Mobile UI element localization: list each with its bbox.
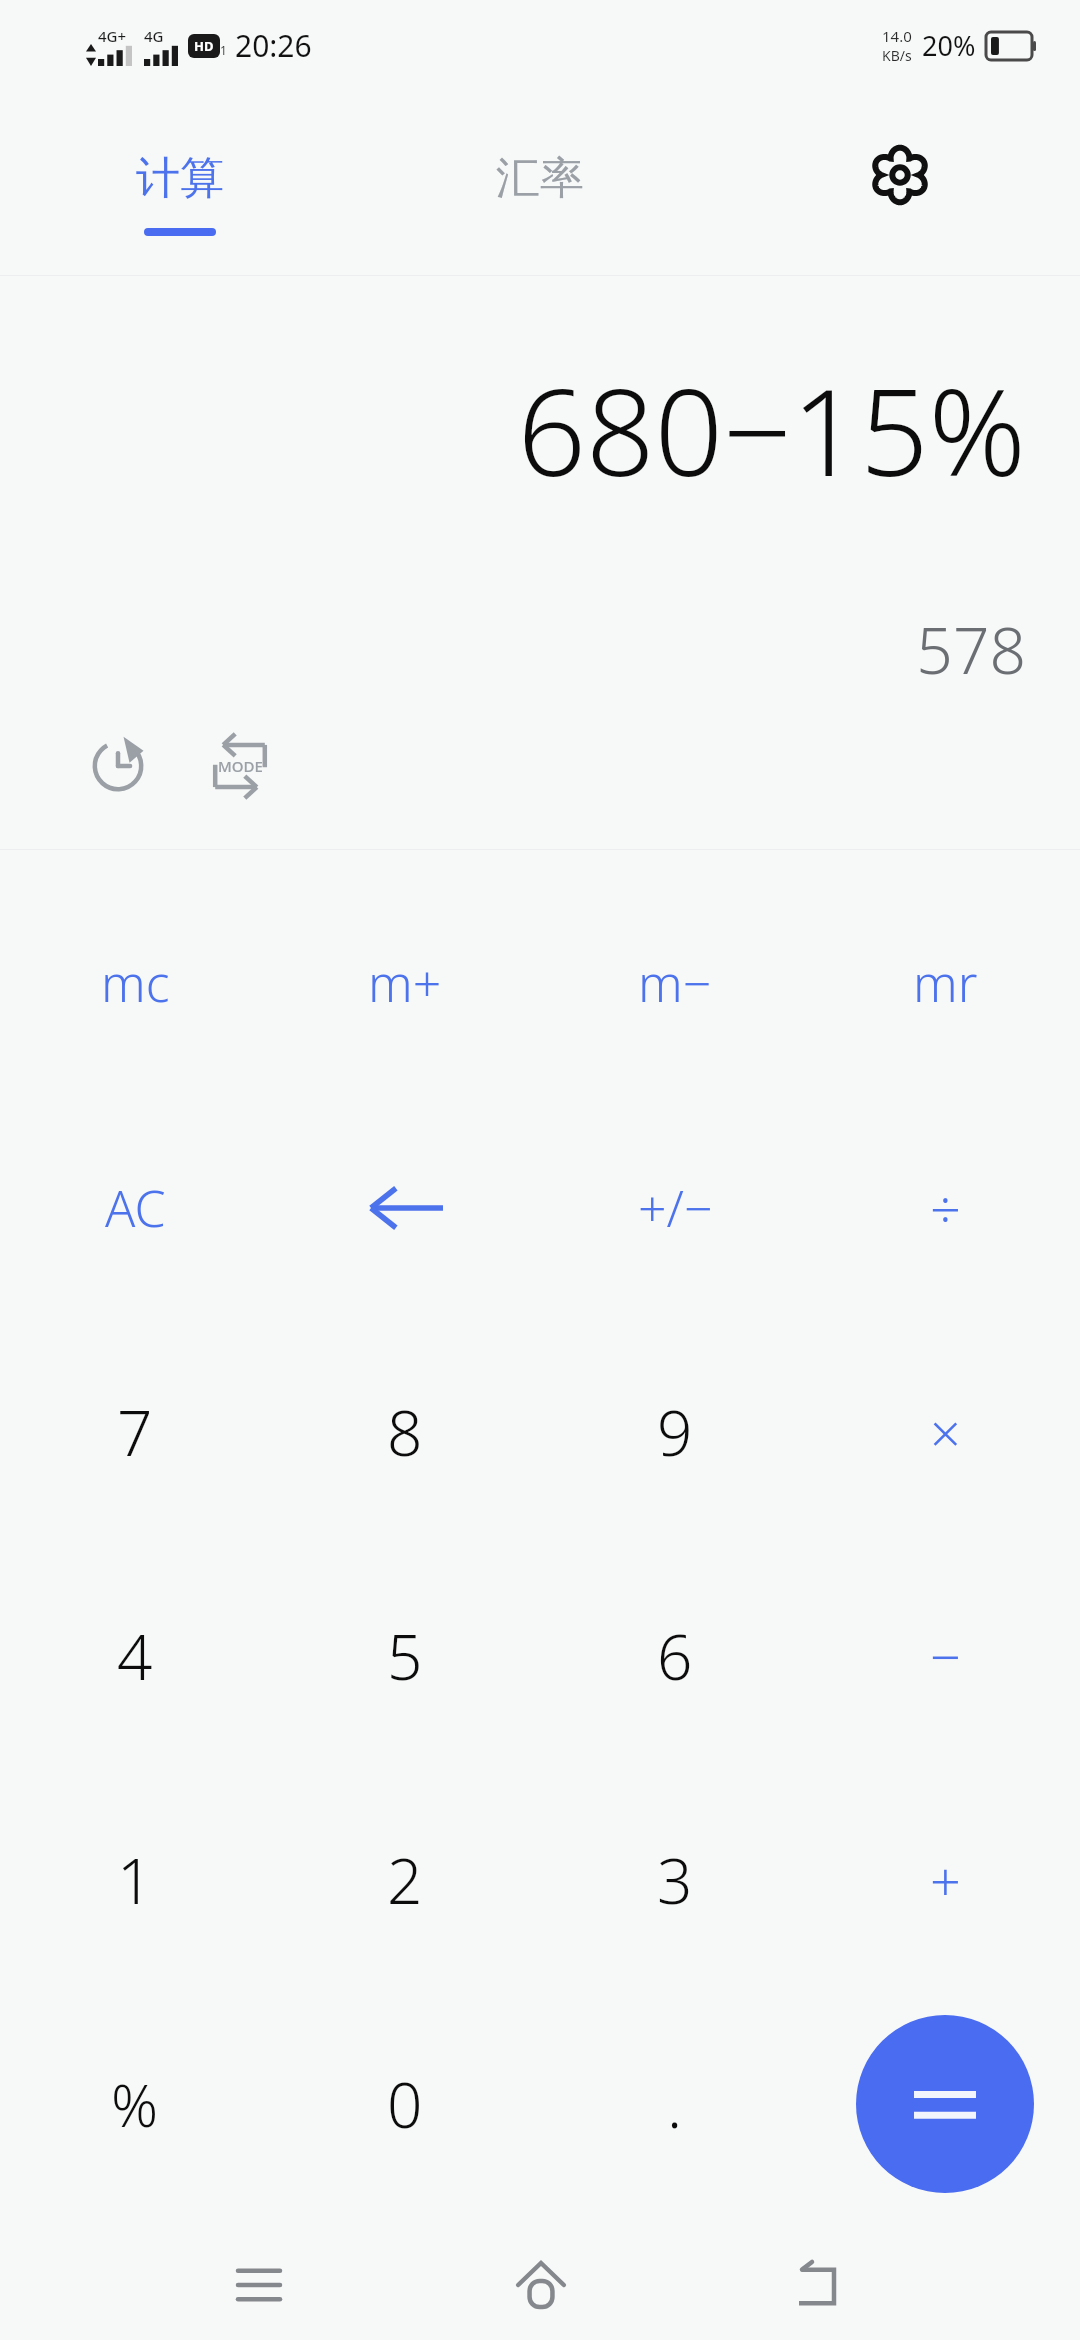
button[interactable]: × bbox=[810, 1320, 1080, 1544]
staticText: 0 bbox=[387, 2062, 423, 2146]
staticText: % bbox=[111, 2065, 159, 2144]
button[interactable]: mc bbox=[0, 870, 270, 1095]
button[interactable]: +/− bbox=[540, 1095, 810, 1320]
staticText: AC bbox=[105, 1174, 166, 1242]
button[interactable]: 5 bbox=[270, 1544, 540, 1768]
staticText: 3 bbox=[657, 1838, 693, 1922]
button[interactable]: Settings bbox=[720, 90, 1080, 276]
staticText: 14.0 bbox=[882, 26, 912, 46]
staticText: 计算 bbox=[136, 151, 224, 206]
button[interactable]: % bbox=[0, 1992, 270, 2216]
staticText: + bbox=[930, 1843, 961, 1917]
staticText: 6 bbox=[657, 1614, 693, 1698]
button[interactable]: 汇率 bbox=[360, 90, 720, 276]
staticText: 4G bbox=[144, 26, 164, 46]
staticText: 4G+ bbox=[98, 26, 127, 46]
staticText: × bbox=[930, 1395, 961, 1469]
staticText: − bbox=[930, 1619, 961, 1693]
button[interactable]: 0 bbox=[270, 1992, 540, 2216]
button[interactable]: − bbox=[810, 1544, 1080, 1768]
button[interactable]: mr bbox=[810, 870, 1080, 1095]
staticText: +/− bbox=[638, 1174, 713, 1242]
button[interactable]: History bbox=[76, 724, 160, 808]
staticText: 9 bbox=[657, 1390, 693, 1474]
staticText: 1 bbox=[220, 42, 227, 58]
button[interactable]: Back bbox=[681, 2230, 962, 2340]
button[interactable]: Equals bbox=[856, 2015, 1034, 2193]
staticText: 5 bbox=[387, 1614, 423, 1698]
button[interactable]: 7 bbox=[0, 1320, 270, 1544]
staticText: MODE bbox=[218, 756, 263, 776]
button[interactable]: 9 bbox=[540, 1320, 810, 1544]
staticText: KB/s bbox=[882, 46, 912, 65]
staticText: 7 bbox=[117, 1390, 153, 1474]
button[interactable]: AC bbox=[0, 1095, 270, 1320]
staticText: m+ bbox=[368, 949, 442, 1017]
button[interactable]: 2 bbox=[270, 1768, 540, 1992]
staticText: . bbox=[667, 2062, 683, 2146]
button[interactable]: 3 bbox=[540, 1768, 810, 1992]
button[interactable]: . bbox=[540, 1992, 810, 2216]
staticText: mr bbox=[913, 949, 978, 1017]
staticText: HD bbox=[194, 37, 214, 55]
button[interactable]: 计算 bbox=[0, 90, 360, 276]
button[interactable]: m+ bbox=[270, 870, 540, 1095]
staticText: 20:26 bbox=[235, 25, 312, 66]
button[interactable]: m− bbox=[540, 870, 810, 1095]
staticText: 578 bbox=[916, 606, 1026, 693]
staticText: 2 bbox=[387, 1838, 423, 1922]
staticText: ÷ bbox=[930, 1171, 961, 1245]
button[interactable]: 1 bbox=[0, 1768, 270, 1992]
button[interactable]: ÷ bbox=[810, 1095, 1080, 1320]
staticText: 1 bbox=[117, 1838, 153, 1922]
staticText: m− bbox=[638, 949, 712, 1017]
staticText: 汇率 bbox=[496, 151, 584, 206]
button[interactable]: 8 bbox=[270, 1320, 540, 1544]
staticText: 680−15% bbox=[517, 348, 1026, 511]
staticText: 4 bbox=[117, 1614, 153, 1698]
button[interactable]: 4 bbox=[0, 1544, 270, 1768]
button[interactable]: + bbox=[810, 1768, 1080, 1992]
button[interactable]: Backspace bbox=[270, 1095, 540, 1320]
staticText: mc bbox=[101, 949, 170, 1017]
button[interactable]: 6 bbox=[540, 1544, 810, 1768]
button[interactable]: Mode bbox=[198, 724, 282, 808]
button[interactable]: Home bbox=[400, 2230, 681, 2340]
button[interactable]: Recent apps bbox=[118, 2230, 400, 2340]
staticText: 8 bbox=[387, 1390, 423, 1474]
staticText: 20% bbox=[922, 27, 976, 64]
